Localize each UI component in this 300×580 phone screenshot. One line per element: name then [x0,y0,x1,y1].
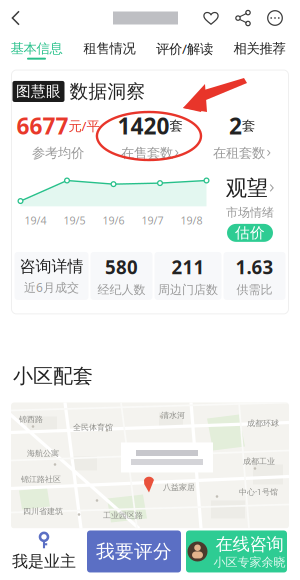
staticText: 在线咨询 [215,533,283,555]
button[interactable]: 相关推荐 [233,37,286,63]
staticText: 租售情况 [83,40,135,57]
staticText: 我要评分 [96,540,172,563]
staticText: 图慧眼 [16,82,61,100]
staticText: 小区专家余晓 [213,555,285,569]
staticText: 清水河 [161,410,185,420]
button[interactable]: 我是业主 [1,529,87,573]
staticText: 近6月成交 [24,279,79,295]
button[interactable]: 基本信息 [10,37,63,63]
staticText: 相关推荐 [233,40,285,57]
button[interactable]: 租售情况 [83,37,136,63]
staticText: 元/平 [68,117,99,135]
staticText: 经纪人数 [97,282,145,297]
staticText: 咨询详情 [19,257,83,276]
button[interactable]: 1420 [104,117,196,155]
staticText: 估价 [235,224,265,242]
staticText: 19/5 [63,213,85,227]
staticText: 小区配套 [13,364,93,388]
staticText: 在租套数 [213,145,265,161]
staticText: 全民体育馆 [73,422,113,432]
staticText: 参考均价 [32,145,84,161]
staticText: 中心·1号馆 [239,486,278,497]
staticText: 套 [242,118,255,134]
button[interactable]: 6677 [12,117,104,155]
button[interactable]: 在线咨询 [186,530,287,572]
staticText: 套 [169,118,182,134]
staticText: 八益家居 [163,482,195,492]
staticText: 19/4 [24,213,46,227]
staticText: 工业园区路 [103,510,143,520]
staticText: 1.63 [235,255,273,279]
staticText: 19/8 [180,213,202,227]
staticText: 周边门店数 [158,282,218,297]
staticText: 在售套数 [121,145,173,161]
staticText: 2 [229,111,242,141]
staticText: 海航公寓 [27,448,59,458]
staticText: 供需比 [236,282,272,297]
staticText: 数据洞察 [69,80,145,103]
staticText: 市场情绪 [226,205,274,220]
staticText: 锦西路 [19,414,43,424]
staticText: 锦江路社区 [21,474,61,484]
button[interactable]: Back [0,1,32,35]
button[interactable]: 观望 [226,175,274,201]
staticText: 19/6 [102,213,124,227]
staticText: 19/7 [141,213,163,227]
button[interactable]: 2 [196,117,288,155]
staticText: 1420 [117,111,169,141]
button[interactable]: 我要评分 [87,530,181,572]
staticText: 海韵华庭 [123,456,155,466]
staticText: 成都工业 [243,456,275,466]
button[interactable]: 评价/解读 [156,37,213,63]
button[interactable]: Share [227,2,259,34]
staticText: 6677 [16,111,68,141]
staticText: 成都环球 [247,418,279,428]
staticText: 基本信息 [10,40,62,57]
staticText: 评价/解读 [156,40,213,57]
staticText: 观望 [226,175,268,201]
button[interactable]: 估价 [227,224,273,242]
staticText: 211 [171,255,204,279]
staticText: 四川省建筑 [23,506,63,516]
button[interactable]: More [259,2,291,34]
button[interactable]: Favorite [195,2,227,34]
staticText: 我是业主 [12,552,76,571]
staticText: 580 [105,255,138,279]
